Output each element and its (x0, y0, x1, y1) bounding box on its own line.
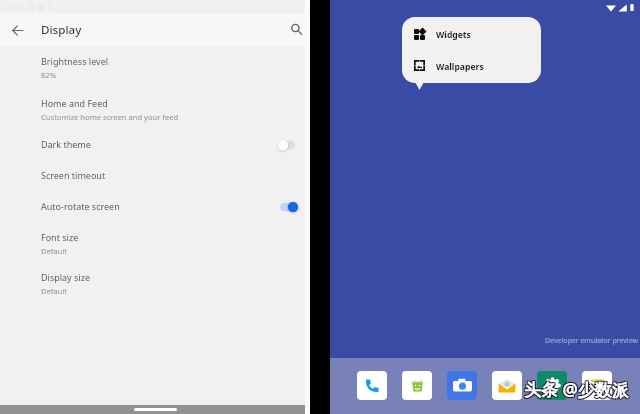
staticText: 头条 @少数派 (523, 379, 628, 402)
button[interactable]: Display size (0, 264, 310, 292)
staticText: Brightness level (41, 55, 109, 67)
staticText: Screen timeout (41, 169, 106, 181)
staticText: Dark theme (41, 138, 91, 150)
staticText: 82% (41, 70, 56, 80)
staticText: Developer emulator preview (545, 336, 638, 346)
staticText: 头条 @少数派 (524, 377, 629, 400)
button[interactable]: Brightness level (0, 48, 310, 76)
staticText: 头条 @少数派 (525, 379, 630, 402)
button[interactable]: Screen timeout (0, 162, 310, 184)
button[interactable]: Back (4, 17, 30, 43)
staticText: Default (41, 286, 68, 296)
staticText: 头条 @少数派 (523, 377, 628, 400)
button[interactable]: Sheets (582, 371, 612, 400)
staticText: 头条 @少数派 (525, 377, 630, 400)
staticText: Widgets (436, 29, 471, 41)
button[interactable]: Dark theme (0, 131, 310, 153)
button[interactable]: Search (282, 17, 308, 43)
staticText: Font size (41, 231, 79, 243)
staticText: Customize home screen and your feed (41, 112, 179, 122)
staticText: Wallpapers (436, 61, 484, 73)
staticText: 头条 @少数派 (523, 378, 628, 401)
button[interactable]: Phone (357, 371, 387, 400)
button[interactable]: Settings (537, 371, 567, 400)
staticText: 头条 @少数派 (524, 378, 629, 401)
staticText: Display size (41, 271, 90, 283)
staticText: Auto-rotate screen (41, 200, 120, 212)
button[interactable]: Play Store (402, 371, 432, 400)
staticText: Display (41, 22, 82, 38)
button[interactable]: Wallpapers (402, 50, 541, 83)
staticText: 头条 @少数派 (524, 379, 629, 402)
button[interactable]: Auto-rotate screen (0, 193, 310, 215)
button[interactable]: Camera (447, 371, 477, 400)
staticText: Home and Feed (41, 97, 108, 109)
staticText: 头条 @少数派 (525, 378, 630, 401)
button[interactable]: Gmail (492, 371, 522, 400)
staticText: Default (41, 246, 68, 256)
button[interactable]: Widgets (402, 17, 541, 50)
button[interactable]: Font size (0, 224, 310, 252)
button[interactable]: Home and Feed (0, 90, 310, 118)
